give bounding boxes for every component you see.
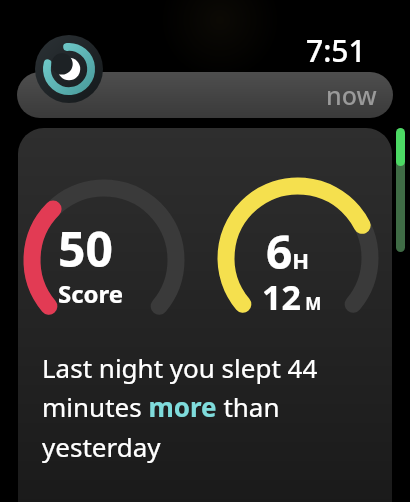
staticText: 6H xyxy=(266,220,310,283)
button[interactable]: Sleep app xyxy=(35,35,103,103)
button[interactable]: 50 xyxy=(18,128,392,502)
staticText: Score xyxy=(58,277,124,310)
staticText: now xyxy=(326,78,377,112)
staticText: 12 M xyxy=(262,274,322,320)
button[interactable]: now xyxy=(17,72,393,118)
staticText: Last night you slept 44 minutes more tha… xyxy=(42,350,372,465)
staticText: 7:51 xyxy=(306,30,366,71)
staticText: 50 xyxy=(58,216,113,281)
